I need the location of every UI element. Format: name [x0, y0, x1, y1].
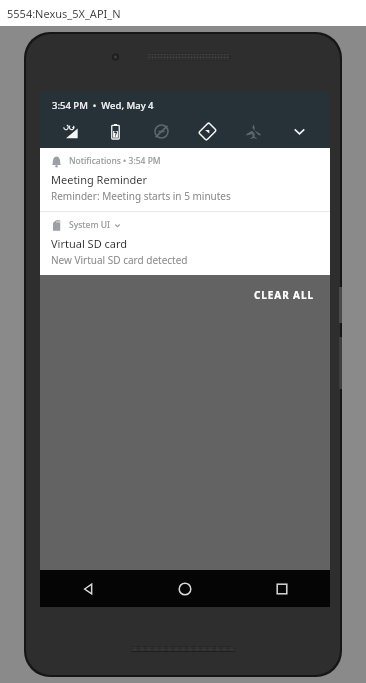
button[interactable]: Back — [40, 570, 136, 607]
staticText: Virtual SD card — [51, 236, 128, 251]
staticText: Notifications • 3:54 PM — [69, 155, 161, 167]
staticText: CLEAR ALL — [254, 288, 314, 302]
button[interactable]: CLEAR ALL — [242, 279, 326, 311]
staticText: New Virtual SD card detected — [51, 253, 188, 267]
staticText: 3:54 PM • Wed, May 4 — [52, 99, 154, 112]
staticText: System UI — [69, 219, 110, 231]
button[interactable]: System UI — [40, 212, 330, 275]
staticText: 5554:Nexus_5X_API_N — [7, 6, 121, 21]
button[interactable]: Airplane mode — [230, 118, 276, 144]
button[interactable]: Expand quick settings — [276, 118, 322, 144]
staticText: Reminder: Meeting starts in 5 minutes — [51, 189, 231, 203]
button[interactable]: Home — [136, 570, 233, 607]
button[interactable]: Auto rotate — [184, 118, 230, 144]
staticText: Meeting Reminder — [51, 172, 148, 187]
button[interactable]: Battery — [93, 118, 138, 144]
button[interactable]: Do not disturb — [138, 118, 184, 144]
button[interactable]: Notifications • 3:54 PM — [40, 148, 330, 211]
button[interactable]: Mobile data 3G — [48, 118, 93, 144]
button[interactable]: Recent apps — [233, 570, 330, 607]
